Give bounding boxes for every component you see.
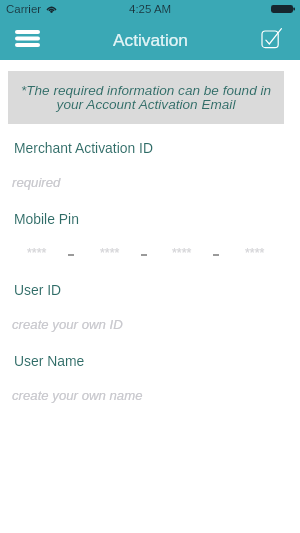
button[interactable]: Confirm xyxy=(252,20,292,58)
staticText: Activation xyxy=(113,30,188,49)
button[interactable]: create your own ID xyxy=(12,317,123,332)
button[interactable]: required xyxy=(12,175,61,190)
button[interactable]: **** xyxy=(100,246,120,260)
button[interactable]: **** xyxy=(245,246,265,260)
button[interactable]: **** xyxy=(172,246,192,260)
button[interactable]: User ID xyxy=(14,282,62,298)
button[interactable]: Mobile Pin xyxy=(14,211,79,227)
button[interactable]: **** xyxy=(27,246,47,260)
staticText: Carrier xyxy=(6,3,42,16)
button[interactable]: Menu xyxy=(7,19,47,57)
button[interactable]: Merchant Activation ID xyxy=(14,140,153,156)
button[interactable]: User Name xyxy=(14,353,85,369)
staticText: 4:25 AM xyxy=(129,3,172,16)
staticText: *The required information can be found i… xyxy=(20,83,272,112)
button[interactable]: create your own name xyxy=(12,388,143,403)
